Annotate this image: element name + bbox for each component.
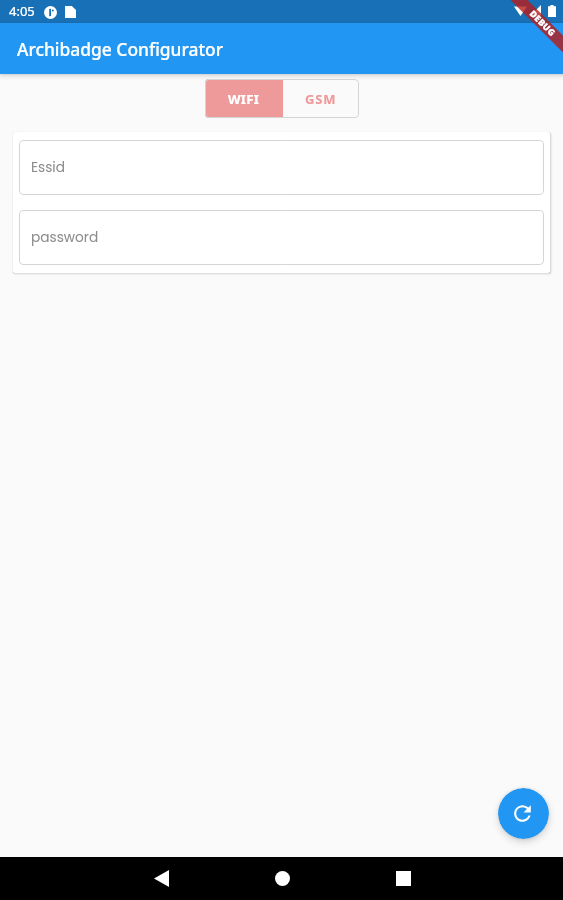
button[interactable]: GSM — [283, 79, 359, 118]
staticText: WIFI — [228, 90, 260, 108]
staticText: Archibadge Configurator — [17, 37, 224, 61]
staticText: DEBUG — [527, 8, 558, 39]
button[interactable]: Essid — [19, 140, 544, 195]
staticText: 4:05 — [9, 2, 35, 20]
button[interactable]: Refresh — [498, 788, 549, 839]
button[interactable]: Back — [138, 857, 184, 900]
staticText: Essid — [31, 158, 65, 177]
staticText: password — [31, 228, 99, 247]
staticText: GSM — [305, 90, 337, 108]
button[interactable]: Home — [259, 857, 305, 900]
button[interactable]: Recents — [380, 857, 426, 900]
button[interactable]: password — [19, 210, 544, 265]
button[interactable]: WIFI — [205, 79, 283, 118]
